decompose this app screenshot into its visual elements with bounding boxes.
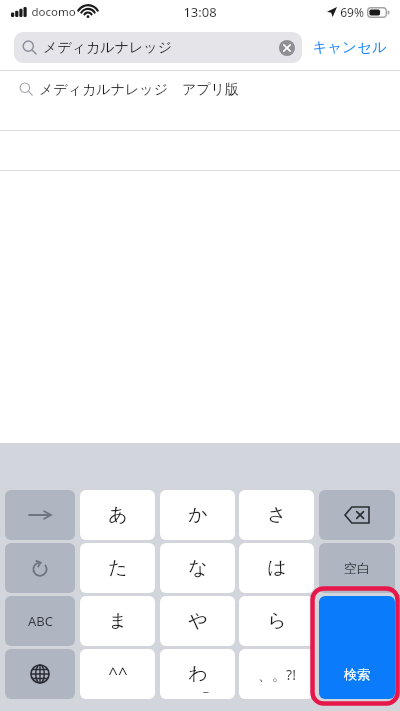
button[interactable]: メディカルナレッジ — [14, 32, 302, 63]
staticText: わ — [188, 662, 208, 686]
button[interactable]: か — [160, 490, 235, 540]
staticText: キャンセル — [312, 38, 387, 56]
staticText: 空白 — [344, 560, 370, 576]
staticText: さ — [267, 503, 287, 527]
staticText: 、。?! — [258, 665, 296, 684]
staticText: docomo — [31, 4, 76, 20]
button[interactable]: 検索 — [319, 596, 395, 699]
staticText: あ — [108, 503, 128, 527]
button[interactable]: Switch keyboard — [5, 649, 75, 699]
button[interactable]: 、。?! — [239, 649, 314, 699]
button[interactable]: ら — [239, 596, 314, 646]
button[interactable]: た — [80, 543, 155, 593]
staticText: ま — [108, 609, 128, 633]
staticText: メディカルナレッジ アプリ版 — [39, 79, 239, 98]
button[interactable]: 空白 — [319, 543, 395, 593]
button[interactable]: わ — [160, 649, 235, 699]
button[interactable]: キャンセル — [302, 38, 388, 56]
staticText: な — [188, 556, 208, 580]
button[interactable]: ^^ — [80, 649, 155, 699]
button[interactable]: な — [160, 543, 235, 593]
staticText: ^^ — [108, 661, 128, 684]
button[interactable]: ABC keyboard — [5, 596, 75, 646]
staticText: た — [108, 556, 128, 580]
staticText: 69% — [340, 4, 364, 20]
staticText: メディカルナレッジ — [43, 39, 172, 57]
button[interactable]: は — [239, 543, 314, 593]
button[interactable]: Undo — [5, 543, 75, 593]
staticText: 検索 — [344, 666, 370, 682]
button[interactable]: Clear text — [279, 40, 295, 56]
button[interactable]: Backspace — [319, 490, 395, 540]
staticText: ABC — [28, 612, 53, 630]
staticText: や — [188, 609, 208, 633]
staticText: 13:08 — [183, 3, 217, 21]
button[interactable]: あ — [80, 490, 155, 540]
staticText: _ — [203, 678, 209, 694]
button[interactable]: メディカルナレッジ アプリ版 — [0, 71, 400, 130]
button[interactable]: Next — [5, 490, 75, 540]
staticText: か — [188, 503, 208, 527]
staticText: は — [267, 556, 287, 580]
button[interactable]: さ — [239, 490, 314, 540]
button[interactable]: ま — [80, 596, 155, 646]
button[interactable]: や — [160, 596, 235, 646]
staticText: ら — [267, 609, 287, 633]
